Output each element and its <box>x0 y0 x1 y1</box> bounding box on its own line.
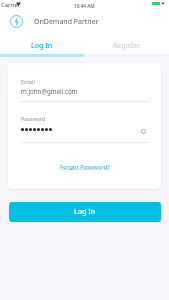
staticText: Register <box>113 41 141 51</box>
staticText: Forgot Password? <box>60 163 110 171</box>
button[interactable]: Register <box>84 38 169 54</box>
button[interactable]: Log In <box>9 202 161 222</box>
staticText: m.john@gmail.com <box>21 87 78 95</box>
staticText: Password <box>21 115 46 122</box>
staticText: Log In <box>74 207 96 217</box>
staticText: 10:44 AM <box>74 3 95 9</box>
staticText: Log In <box>31 41 53 51</box>
button[interactable]: Show password <box>139 127 148 136</box>
button[interactable]: Forgot Password? <box>60 163 110 171</box>
button[interactable]: Log In <box>0 38 84 54</box>
staticText: Carrier <box>1 1 21 9</box>
staticText: Email <box>21 78 35 85</box>
staticText: OnDemand Partner <box>34 17 99 27</box>
